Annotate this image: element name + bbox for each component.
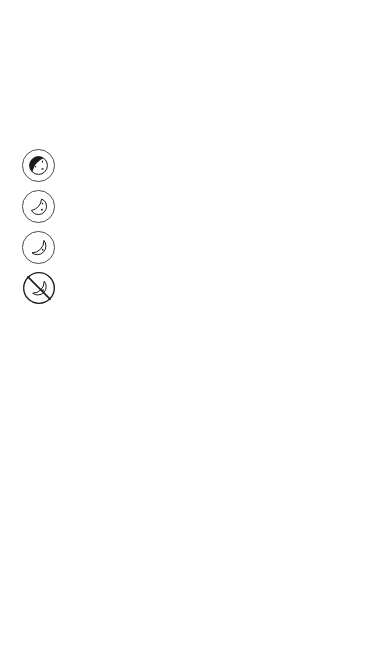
button[interactable]: Crescent moon [22, 231, 55, 264]
button[interactable]: Night mode [22, 190, 55, 223]
button[interactable]: Moon phase [22, 149, 55, 182]
button[interactable]: Night mode off [23, 272, 55, 304]
